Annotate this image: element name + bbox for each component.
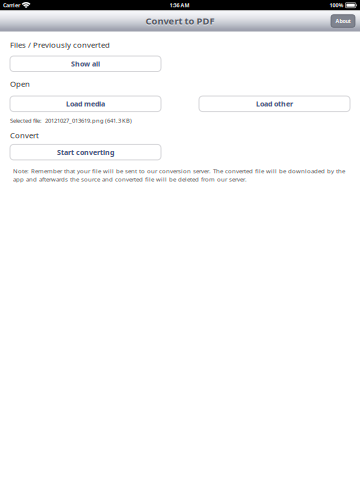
- staticText: Convert to PDF: [145, 16, 214, 28]
- staticText: Note: Remember that your file will be se…: [13, 167, 345, 183]
- staticText: 100%: [329, 2, 343, 9]
- staticText: Open: [10, 78, 30, 89]
- button[interactable]: Show all: [10, 56, 161, 71]
- staticText: Files / Previously converted: [10, 39, 110, 50]
- button[interactable]: About: [331, 15, 355, 27]
- staticText: Load media: [66, 99, 105, 109]
- staticText: Start converting: [57, 147, 114, 157]
- staticText: Show all: [71, 59, 100, 69]
- staticText: Load other: [256, 99, 293, 109]
- staticText: Convert to PDF: [145, 15, 214, 27]
- staticText: 1:36 AM: [169, 2, 189, 9]
- button[interactable]: Load other: [199, 96, 350, 112]
- staticText: Selected file: 20121027_013619.png (641.…: [10, 117, 132, 124]
- button[interactable]: Start converting: [10, 144, 161, 160]
- staticText: Convert: [10, 130, 39, 140]
- button[interactable]: Load media: [10, 96, 161, 112]
- staticText: Carrier: [3, 2, 20, 9]
- staticText: About: [335, 17, 350, 25]
